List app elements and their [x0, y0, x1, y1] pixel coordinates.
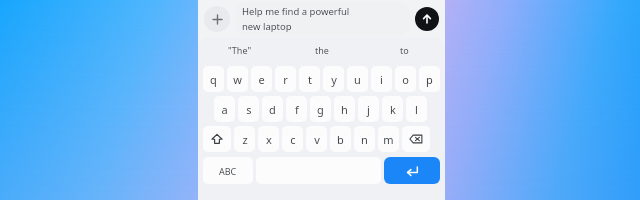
- button[interactable]: ABC: [203, 157, 253, 184]
- staticText: ABC: [219, 165, 237, 177]
- staticText: o: [402, 72, 409, 87]
- staticText: u: [354, 72, 361, 87]
- button[interactable]: Send: [415, 7, 439, 31]
- button[interactable]: v: [306, 126, 327, 152]
- button[interactable]: u: [347, 66, 368, 92]
- button[interactable]: b: [330, 126, 351, 152]
- staticText: the: [315, 44, 329, 56]
- button[interactable]: j: [358, 96, 379, 122]
- staticText: a: [221, 102, 228, 117]
- staticText: "The": [228, 44, 252, 56]
- staticText: v: [314, 132, 320, 147]
- button[interactable]: Backspace: [402, 126, 430, 152]
- button[interactable]: z: [234, 126, 255, 152]
- staticText: w: [233, 72, 242, 87]
- staticText: x: [266, 132, 272, 147]
- staticText: p: [426, 72, 433, 87]
- staticText: r: [283, 72, 288, 87]
- button[interactable]: n: [354, 126, 375, 152]
- staticText: s: [246, 102, 252, 117]
- button[interactable]: l: [406, 96, 427, 122]
- staticText: k: [390, 102, 396, 117]
- button[interactable]: m: [378, 126, 399, 152]
- button[interactable]: g: [310, 96, 331, 122]
- button[interactable]: d: [262, 96, 283, 122]
- button[interactable]: i: [371, 66, 392, 92]
- staticText: c: [290, 132, 296, 147]
- button[interactable]: w: [227, 66, 248, 92]
- staticText: new laptop: [242, 20, 292, 33]
- staticText: b: [337, 132, 344, 147]
- button[interactable]: y: [323, 66, 344, 92]
- button[interactable]: x: [258, 126, 279, 152]
- button[interactable]: f: [286, 96, 307, 122]
- button[interactable]: s: [238, 96, 259, 122]
- staticText: n: [361, 132, 368, 147]
- staticText: t: [308, 72, 312, 87]
- button[interactable]: h: [334, 96, 355, 122]
- staticText: e: [258, 72, 265, 87]
- button[interactable]: r: [275, 66, 296, 92]
- staticText: to: [400, 44, 409, 56]
- button[interactable]: Help me find a powerful: [236, 2, 410, 36]
- button[interactable]: c: [282, 126, 303, 152]
- staticText: h: [341, 102, 348, 117]
- button[interactable]: t: [299, 66, 320, 92]
- button[interactable]: q: [203, 66, 224, 92]
- staticText: y: [331, 72, 337, 87]
- button[interactable]: the: [281, 37, 363, 63]
- button[interactable]: a: [214, 96, 235, 122]
- staticText: m: [383, 132, 394, 147]
- staticText: z: [242, 132, 248, 147]
- button[interactable]: to: [363, 37, 445, 63]
- staticText: j: [367, 102, 370, 117]
- button[interactable]: Shift: [203, 126, 231, 152]
- staticText: q: [210, 72, 217, 87]
- button[interactable]: o: [395, 66, 416, 92]
- staticText: l: [415, 102, 418, 117]
- button[interactable]: Add attachment: [204, 6, 230, 32]
- button[interactable]: Enter: [384, 157, 440, 184]
- staticText: d: [269, 102, 276, 117]
- button[interactable]: "The": [198, 37, 281, 63]
- staticText: g: [317, 102, 324, 117]
- staticText: f: [295, 102, 299, 117]
- staticText: i: [380, 72, 383, 87]
- staticText: Help me find a powerful: [242, 5, 350, 18]
- button[interactable]: p: [419, 66, 440, 92]
- button[interactable]: e: [251, 66, 272, 92]
- button[interactable]: k: [382, 96, 403, 122]
